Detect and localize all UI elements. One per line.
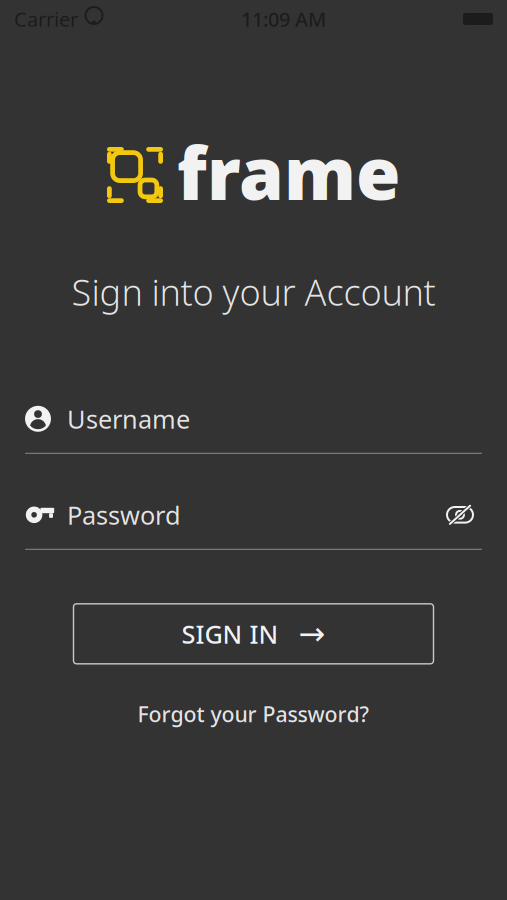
staticText: Sign into your Account: [71, 268, 435, 316]
button[interactable]: SIGN IN: [73, 604, 433, 664]
staticText: frame: [177, 124, 400, 220]
staticText: →: [298, 616, 325, 652]
staticText: 11:09 AM: [241, 6, 326, 32]
staticText: SIGN IN: [181, 617, 278, 651]
staticText: Username: [67, 402, 190, 436]
staticText: Forgot your Password?: [137, 700, 369, 728]
staticText: Carrier: [14, 6, 78, 32]
button[interactable]: Show password: [438, 494, 482, 536]
staticText: Password: [67, 498, 181, 532]
button[interactable]: Forgot your Password?: [125, 692, 381, 736]
